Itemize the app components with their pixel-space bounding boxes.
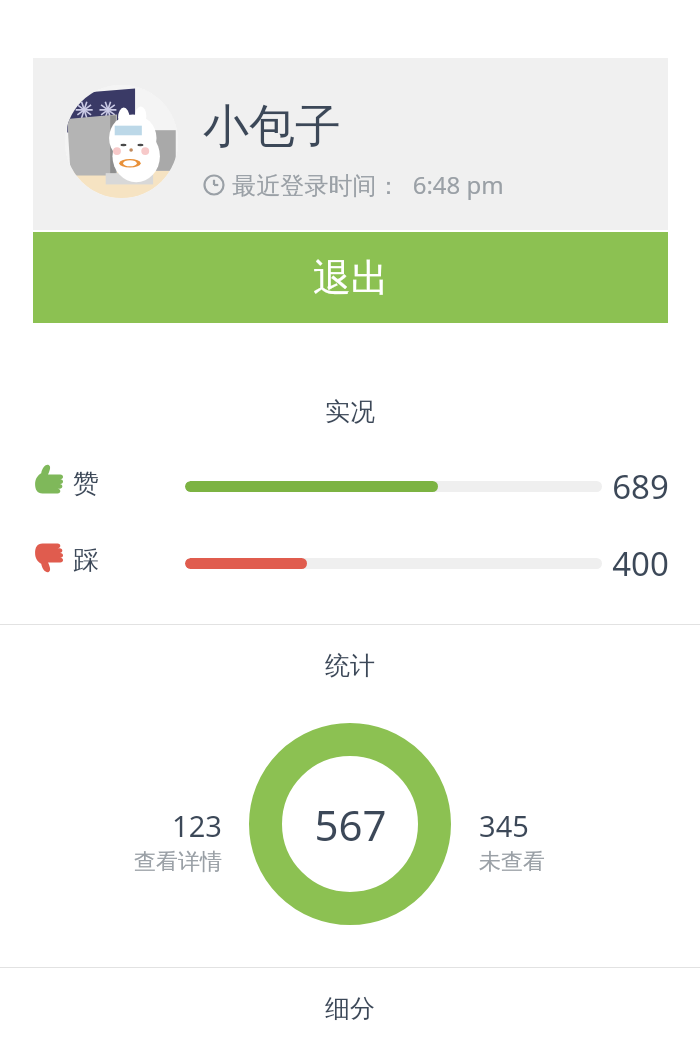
other: Dislike	[31, 540, 65, 574]
staticText: 345	[479, 806, 529, 845]
button[interactable]: 123	[96, 806, 222, 876]
button[interactable]: 退出	[33, 232, 668, 323]
button[interactable]: Dislike	[0, 539, 700, 587]
button[interactable]: Like	[0, 462, 700, 510]
staticText: 小包子	[203, 98, 341, 156]
staticText: 400	[612, 541, 669, 586]
staticText: 查看详情	[134, 848, 222, 876]
staticText: 最近登录时间： 6:48 pm	[232, 168, 504, 201]
staticText: 退出	[313, 254, 389, 302]
staticText: 踩	[73, 544, 99, 577]
staticText: 567	[314, 796, 387, 853]
button[interactable]: 小包子	[33, 58, 668, 230]
staticText: 未查看	[479, 848, 545, 876]
staticText: 统计	[325, 650, 375, 681]
button[interactable]: 345	[479, 806, 605, 876]
staticText: 689	[612, 464, 669, 509]
other: Like	[31, 463, 65, 497]
staticText: 细分	[325, 993, 375, 1024]
staticText: 赞	[73, 467, 99, 500]
button[interactable]: 567	[249, 723, 451, 925]
staticText: 123	[172, 806, 222, 845]
staticText: 实况	[325, 396, 375, 427]
